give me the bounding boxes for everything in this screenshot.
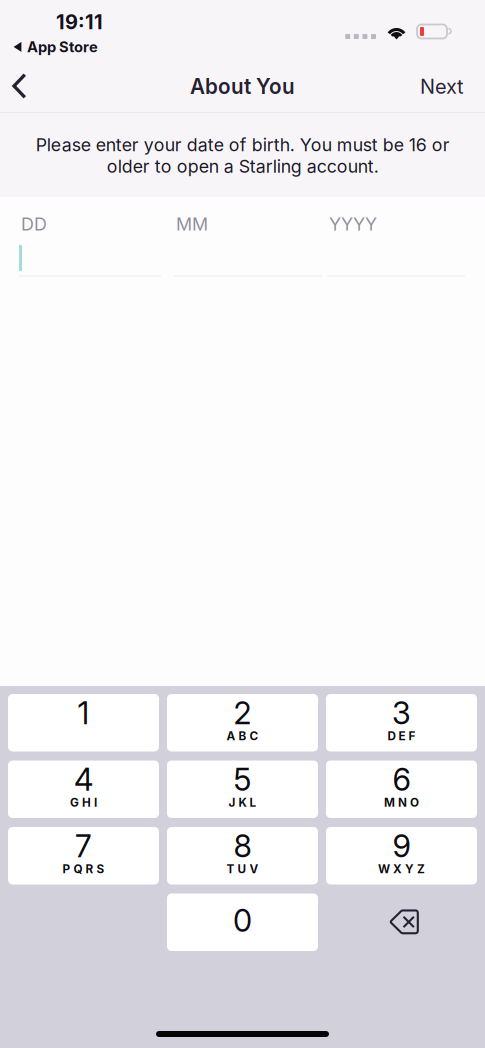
button[interactable]: 8 bbox=[167, 827, 318, 884]
button[interactable]: Back bbox=[0, 58, 60, 112]
button[interactable]: 3 bbox=[326, 694, 477, 751]
staticText: 5 bbox=[233, 761, 251, 798]
staticText: MM bbox=[176, 213, 208, 235]
staticText: D E F bbox=[387, 729, 415, 743]
staticText: J K L bbox=[228, 795, 256, 810]
staticText: G H I bbox=[70, 795, 97, 810]
staticText: P Q R S bbox=[62, 862, 104, 876]
staticText: App Store bbox=[27, 38, 98, 56]
button[interactable]: 5 bbox=[167, 760, 318, 818]
staticText: 0 bbox=[233, 902, 252, 939]
staticText: 9 bbox=[392, 827, 410, 864]
staticText: DD bbox=[21, 213, 47, 235]
button[interactable]: Return to App Store bbox=[13, 37, 98, 57]
staticText: Please enter your date of birth. You mus… bbox=[35, 134, 449, 177]
staticText: 6 bbox=[392, 761, 410, 798]
button[interactable]: 0 bbox=[167, 893, 318, 951]
staticText: T U V bbox=[226, 862, 258, 876]
staticText: 19:11 bbox=[56, 10, 103, 34]
button[interactable]: 9 bbox=[326, 827, 477, 884]
button[interactable]: 1 bbox=[8, 694, 159, 751]
button[interactable]: 2 bbox=[167, 694, 318, 751]
button[interactable]: Next bbox=[395, 58, 485, 112]
staticText: 7 bbox=[75, 827, 92, 864]
button[interactable]: Delete bbox=[326, 893, 477, 951]
staticText: YYYY bbox=[329, 213, 377, 235]
button[interactable]: 7 bbox=[8, 827, 159, 884]
staticText: 4 bbox=[74, 761, 93, 798]
staticText: A B C bbox=[226, 729, 258, 743]
button[interactable]: 4 bbox=[8, 760, 159, 818]
staticText: About You bbox=[190, 74, 295, 99]
staticText: Next bbox=[420, 74, 464, 99]
staticText: W X Y Z bbox=[378, 862, 425, 876]
staticText: 8 bbox=[233, 827, 251, 864]
staticText: 2 bbox=[233, 694, 251, 731]
staticText: 1 bbox=[77, 694, 89, 731]
button[interactable]: 6 bbox=[326, 760, 477, 818]
staticText: M N O bbox=[384, 795, 419, 810]
staticText: 3 bbox=[392, 694, 411, 731]
